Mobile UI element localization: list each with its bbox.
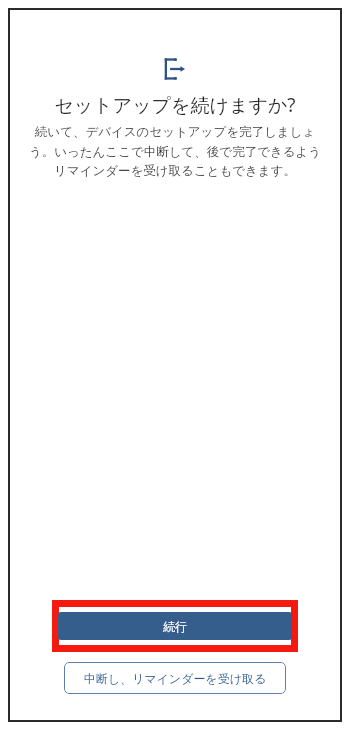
staticText: 続行 bbox=[58, 619, 292, 634]
staticText: セットアップを続けますか? bbox=[18, 92, 332, 118]
button[interactable]: 続行 bbox=[58, 612, 292, 640]
staticText: 中断し、リマインダーを受け取る bbox=[64, 671, 286, 686]
button[interactable]: 中断し、リマインダーを受け取る bbox=[64, 662, 286, 694]
other: Exit setup bbox=[162, 56, 188, 82]
staticText: 続いて、デバイスのセットアップを完了しましょう。いったんここで中断して、後で完了… bbox=[26, 124, 324, 178]
